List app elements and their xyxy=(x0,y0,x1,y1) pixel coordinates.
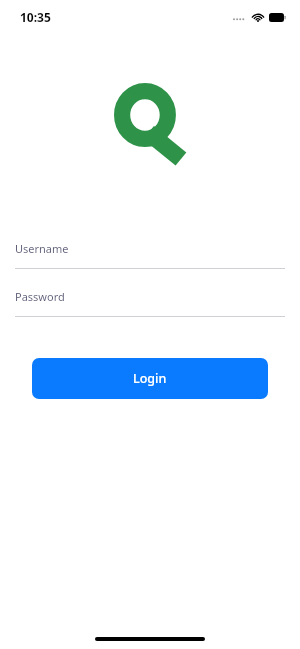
button[interactable]: Username xyxy=(0,241,300,269)
button[interactable]: Login xyxy=(32,358,268,399)
staticText: Login xyxy=(133,370,167,387)
button[interactable]: Password xyxy=(0,289,300,317)
staticText: Username xyxy=(15,241,69,256)
staticText: Password xyxy=(15,289,65,304)
staticText: 10:35 xyxy=(20,9,51,25)
